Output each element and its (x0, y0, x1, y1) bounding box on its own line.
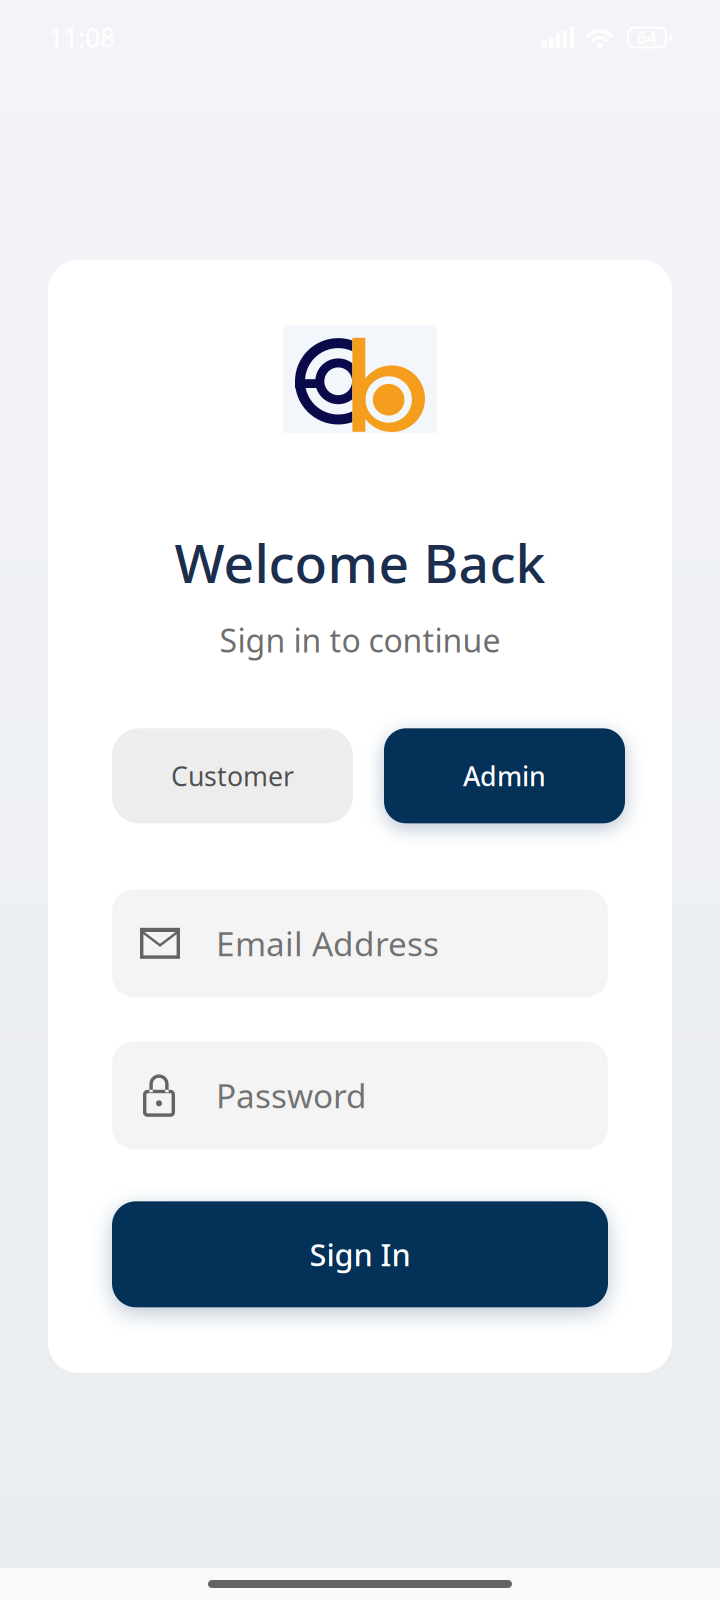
button[interactable]: Customer (112, 728, 353, 823)
staticText: Password (216, 1073, 367, 1117)
staticText: Welcome Back (174, 527, 545, 598)
button[interactable]: Sign In (112, 1201, 608, 1307)
staticText: 11:08 (48, 20, 115, 55)
staticText: Customer (171, 758, 294, 793)
staticText: Sign In (309, 1234, 410, 1275)
button[interactable]: Admin (384, 728, 625, 823)
staticText: Email Address (216, 921, 439, 965)
staticText: Sign in to continue (219, 619, 500, 661)
staticText: Admin (463, 758, 546, 793)
staticText: 64 (637, 26, 657, 49)
